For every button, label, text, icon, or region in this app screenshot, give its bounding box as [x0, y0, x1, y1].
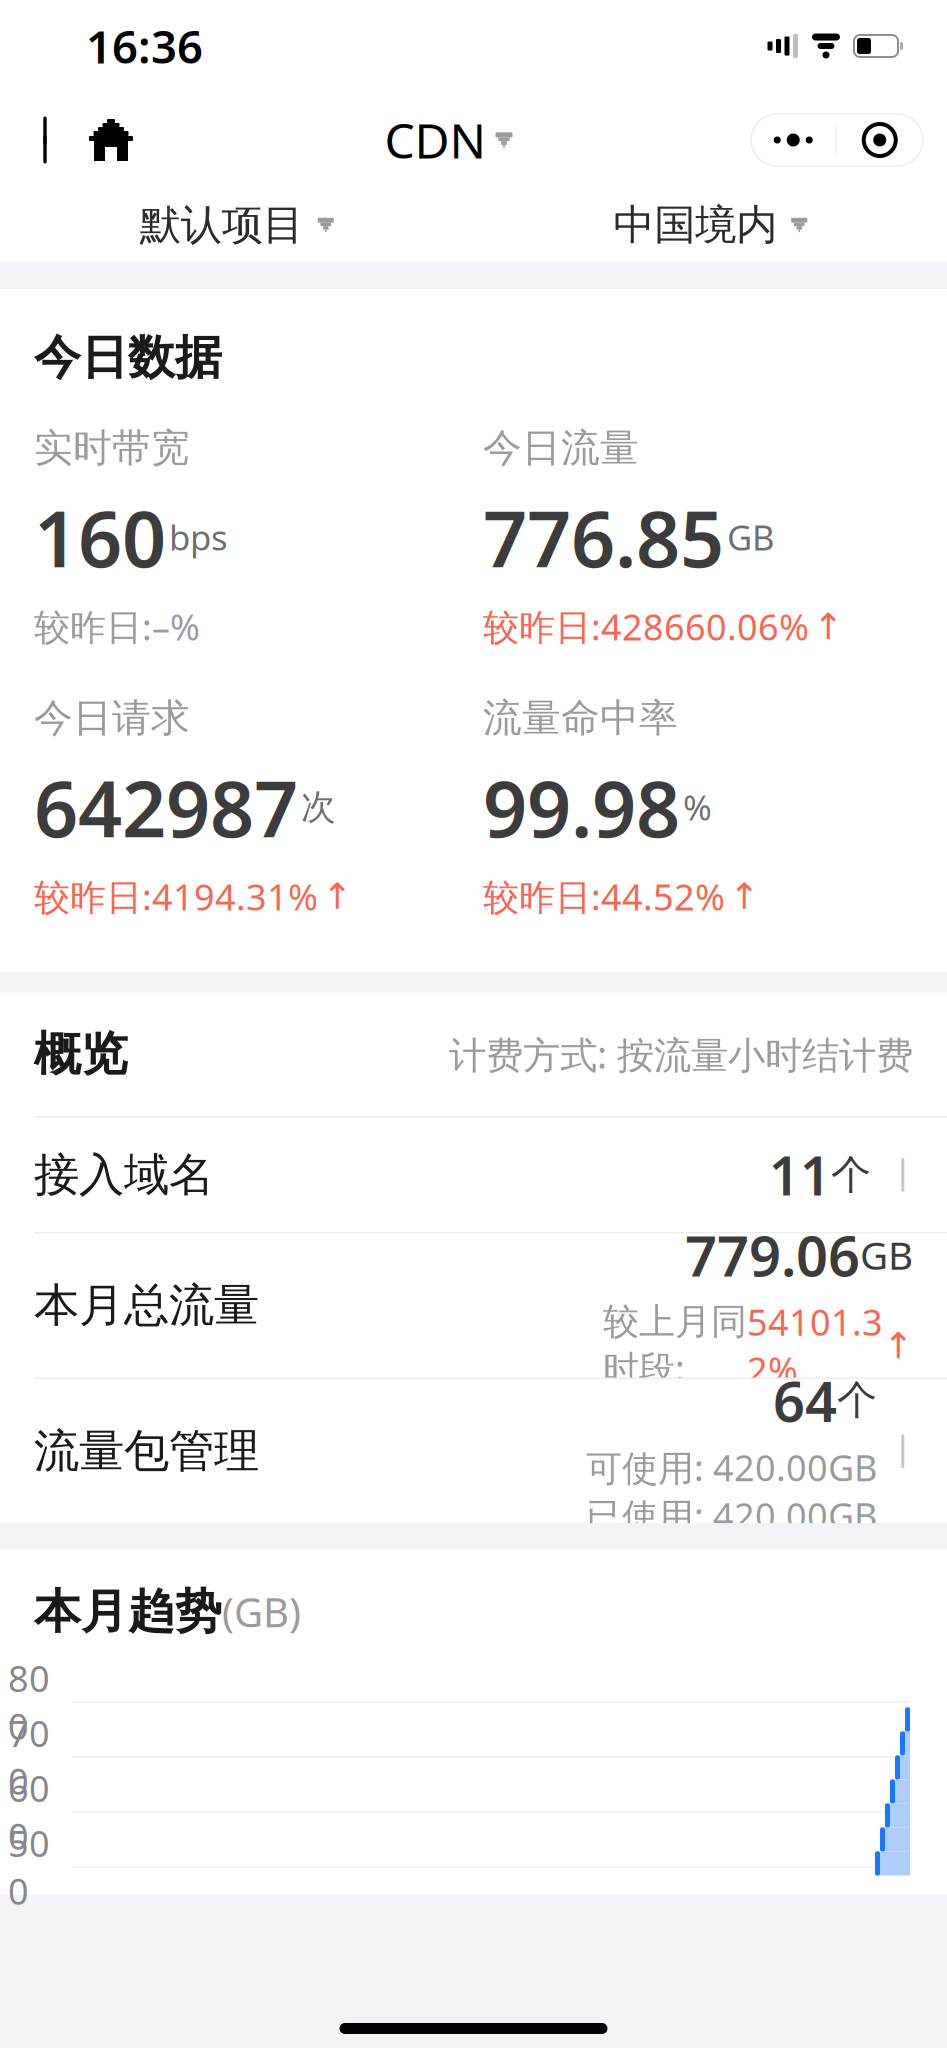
staticText: 可使用: 420.00GB 已使用: 420.00GB [586, 1443, 877, 1539]
staticText: bps [169, 514, 228, 560]
staticText: 160 [34, 486, 166, 588]
staticText: 今日请求 [34, 694, 190, 742]
staticText: 今日流量 [483, 424, 639, 472]
button[interactable]: Home [76, 105, 146, 175]
staticText: ↑ [322, 876, 352, 917]
staticText: 776.85 [483, 486, 724, 588]
staticText: 流量命中率 [483, 694, 678, 742]
staticText: 计费方式: 按流量小时结计费 [449, 1029, 913, 1079]
staticText: 本月趋势 [34, 1583, 222, 1640]
staticText: 本月总流量 [34, 1278, 259, 1333]
staticText: ↑ [883, 1325, 913, 1366]
staticText: % [683, 784, 712, 830]
staticText: 779.06 [685, 1217, 860, 1292]
staticText: 中国境内 [613, 200, 777, 250]
staticText: 99.98 [483, 756, 680, 858]
staticText: 54101.32% [747, 1298, 883, 1393]
button[interactable]: More [751, 114, 835, 166]
staticText: 个 [831, 1150, 871, 1199]
staticText: 700 [8, 1709, 50, 1805]
button[interactable]: 中国境内 [603, 188, 817, 262]
button[interactable]: Mini program menu [837, 114, 923, 166]
button[interactable]: 流量包管理 [0, 1379, 947, 1523]
staticText: GB [860, 1229, 913, 1280]
staticText: 64 [773, 1363, 837, 1437]
button[interactable]: 默认项目 [130, 188, 344, 262]
staticText: 较昨日:–% [34, 602, 200, 650]
staticText: GB [727, 514, 775, 560]
staticText: 16:36 [86, 16, 203, 76]
button[interactable]: 接入域名 [0, 1118, 947, 1232]
staticText: 概览 [34, 1026, 128, 1083]
staticText: 实时带宽 [34, 424, 190, 472]
staticText: 较昨日:44.52% [483, 872, 725, 920]
staticText: 今日数据 [34, 329, 222, 386]
staticText: 次 [301, 786, 336, 828]
staticText: 11 [769, 1139, 831, 1210]
staticText: 较上月同时段: [603, 1300, 747, 1392]
staticText: CDN [384, 108, 485, 172]
staticText: 642987 [34, 756, 298, 858]
staticText: (GB) [222, 1585, 301, 1638]
button[interactable]: CDN [376, 105, 520, 175]
staticText: 默认项目 [140, 200, 304, 250]
button[interactable]: Back [14, 105, 76, 175]
staticText: 较昨日:4194.31% [34, 872, 318, 920]
staticText: ↑ [729, 876, 759, 917]
staticText: 接入域名 [34, 1147, 214, 1203]
staticText: 流量包管理 [34, 1423, 259, 1479]
staticText: 800 [8, 1654, 50, 1750]
staticText: 个 [837, 1376, 877, 1425]
staticText: 500 [8, 1819, 50, 1915]
staticText: ↑ [813, 606, 843, 647]
staticText: 600 [8, 1764, 50, 1860]
staticText: 较昨日:428660.06% [483, 602, 809, 650]
